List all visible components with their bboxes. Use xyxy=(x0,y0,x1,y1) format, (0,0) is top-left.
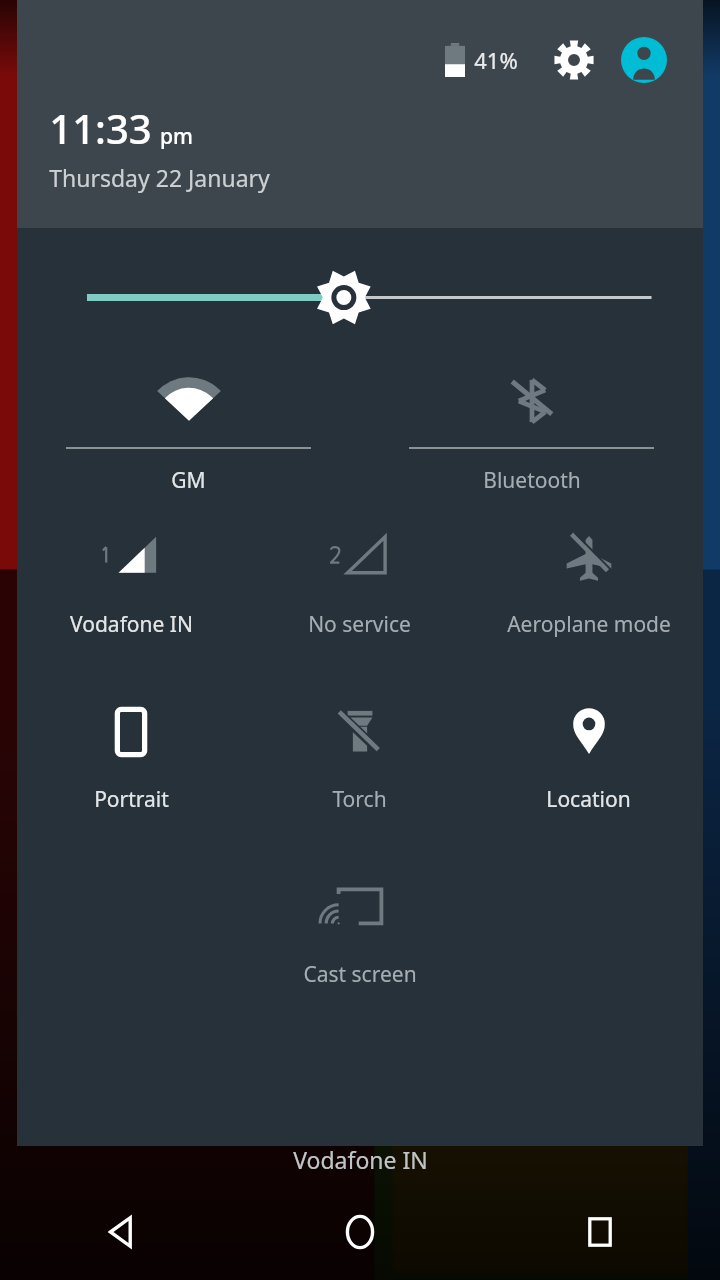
button[interactable]: No service xyxy=(245,508,474,639)
staticText: Thursday 22 January xyxy=(49,162,270,193)
button[interactable]: Location xyxy=(474,683,703,814)
button[interactable]: Recents xyxy=(480,1184,720,1280)
button[interactable]: Cast screen xyxy=(245,858,474,989)
staticText: Vodafone IN xyxy=(293,1144,428,1175)
staticText: Cast screen xyxy=(303,960,417,989)
staticText: Bluetooth xyxy=(483,466,581,495)
staticText: Portrait xyxy=(94,785,169,814)
button[interactable]: GM xyxy=(17,358,360,495)
staticText: GM xyxy=(171,466,206,495)
button[interactable]: Torch xyxy=(245,683,474,814)
button[interactable]: Settings xyxy=(550,36,598,84)
button[interactable]: Bluetooth xyxy=(360,358,703,495)
button[interactable]: Brightness xyxy=(17,228,703,358)
button[interactable]: Aeroplane mode xyxy=(474,508,703,639)
staticText: Torch xyxy=(332,785,387,814)
button[interactable]: Back xyxy=(0,1184,240,1280)
staticText: No service xyxy=(308,610,411,639)
button[interactable]: Portrait xyxy=(17,683,245,814)
staticText: 41% xyxy=(474,45,518,75)
staticText: Aeroplane mode xyxy=(507,610,671,639)
staticText: Vodafone IN xyxy=(70,610,193,639)
button[interactable]: Home xyxy=(240,1184,480,1280)
button[interactable]: Vodafone IN xyxy=(17,508,245,639)
staticText: 11:33 xyxy=(49,101,152,155)
staticText: pm xyxy=(160,122,193,151)
button[interactable]: User profile xyxy=(620,36,668,84)
staticText: Location xyxy=(546,785,631,814)
